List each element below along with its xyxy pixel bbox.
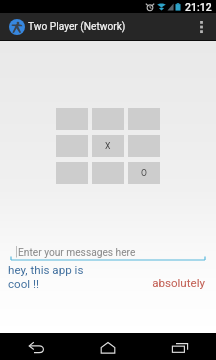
staticText: 21:12 bbox=[185, 1, 212, 13]
staticText: Enter your messages here bbox=[18, 247, 136, 259]
button[interactable]: Home bbox=[72, 333, 144, 360]
staticText: X bbox=[105, 141, 111, 151]
staticText: hey, this app is cool !! bbox=[8, 263, 84, 291]
staticText: Two Player (Network) bbox=[28, 21, 126, 33]
button[interactable]: Enter your messages here bbox=[0, 243, 216, 262]
button[interactable]: More options bbox=[190, 13, 212, 40]
button[interactable]: Back bbox=[0, 333, 72, 360]
button[interactable]: Recents bbox=[144, 333, 216, 360]
staticText: O bbox=[141, 168, 147, 178]
button[interactable]: O bbox=[128, 162, 160, 184]
staticText: absolutely bbox=[0, 276, 205, 290]
button[interactable]: X bbox=[92, 135, 124, 157]
